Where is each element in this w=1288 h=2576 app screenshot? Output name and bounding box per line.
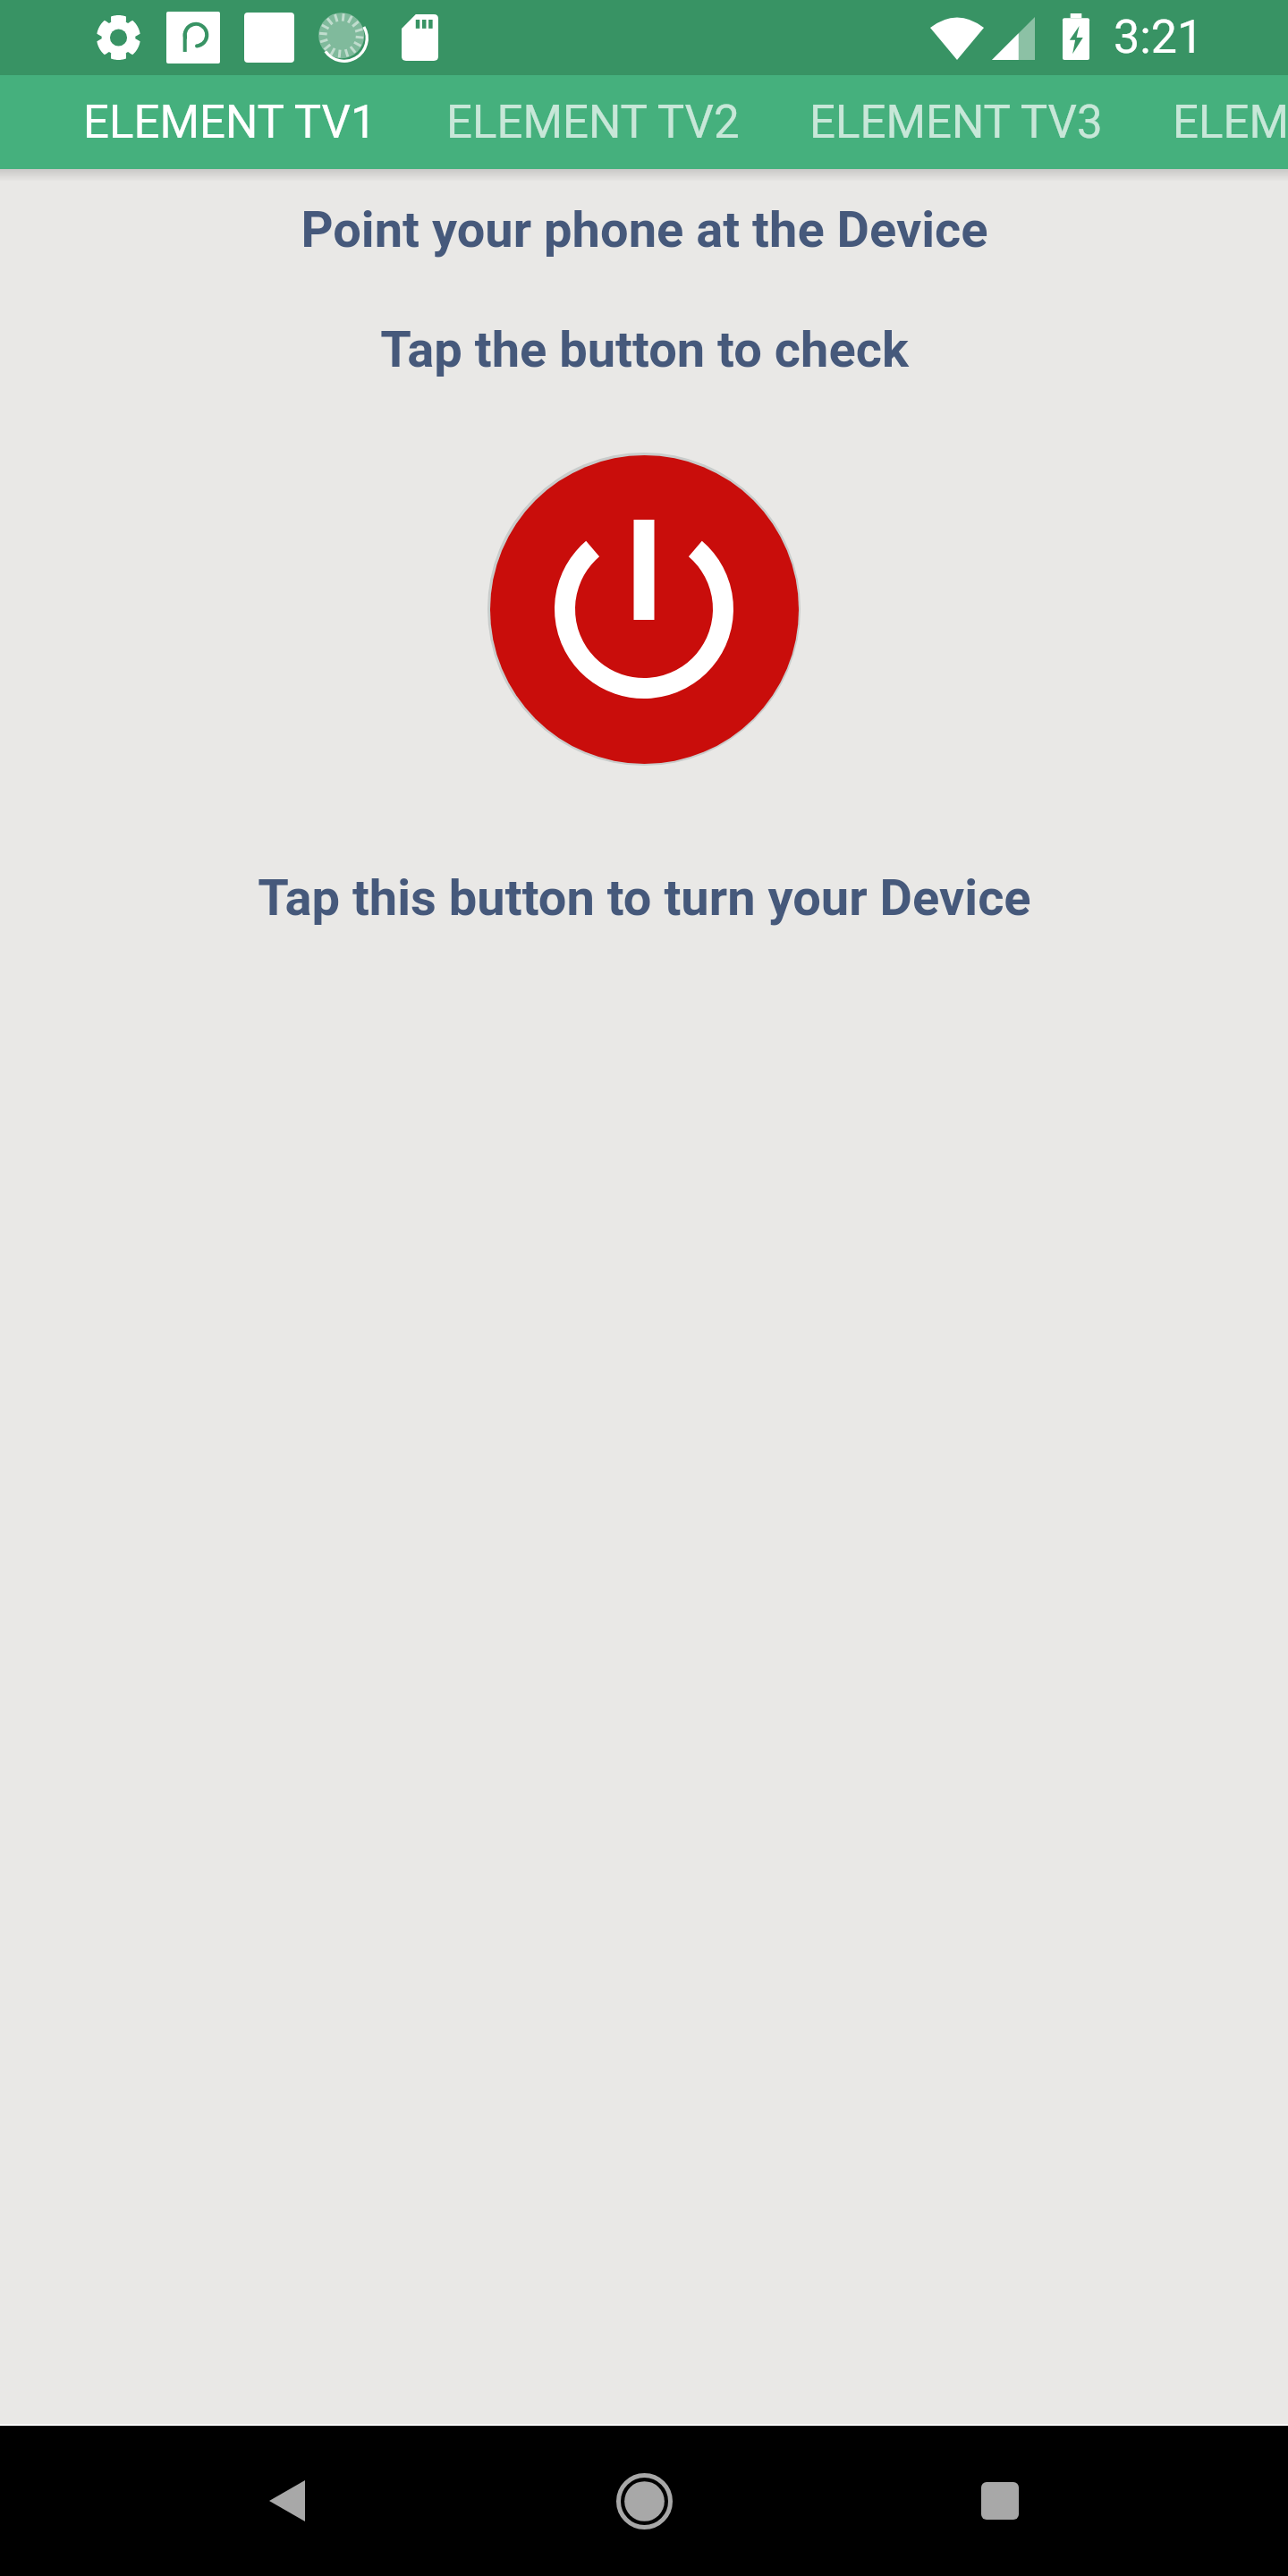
button[interactable]: ELEMENT TV2 bbox=[411, 75, 775, 169]
button[interactable]: ELEMENT TV3 bbox=[775, 75, 1138, 169]
button[interactable]: Recent apps bbox=[946, 2447, 1054, 2555]
staticText: 3:21 bbox=[1114, 10, 1204, 64]
staticText: ELEMENT TV2 bbox=[446, 96, 740, 149]
staticText: Tap this button to turn your Device bbox=[258, 869, 1031, 928]
staticText: ELEMENT TV3 bbox=[809, 96, 1103, 149]
button[interactable]: ELEMENT TV4 bbox=[1138, 75, 1288, 169]
button[interactable]: Power bbox=[487, 453, 801, 766]
staticText: Point your phone at the Device bbox=[301, 200, 988, 259]
staticText: ELEMENT TV1 bbox=[83, 96, 377, 149]
button[interactable]: ELEMENT TV1 bbox=[48, 75, 411, 169]
button[interactable]: Home bbox=[590, 2447, 698, 2555]
staticText: ELEMENT TV4 bbox=[1173, 96, 1288, 149]
button[interactable]: Back bbox=[233, 2447, 341, 2555]
staticText: Tap the button to check bbox=[380, 320, 909, 379]
